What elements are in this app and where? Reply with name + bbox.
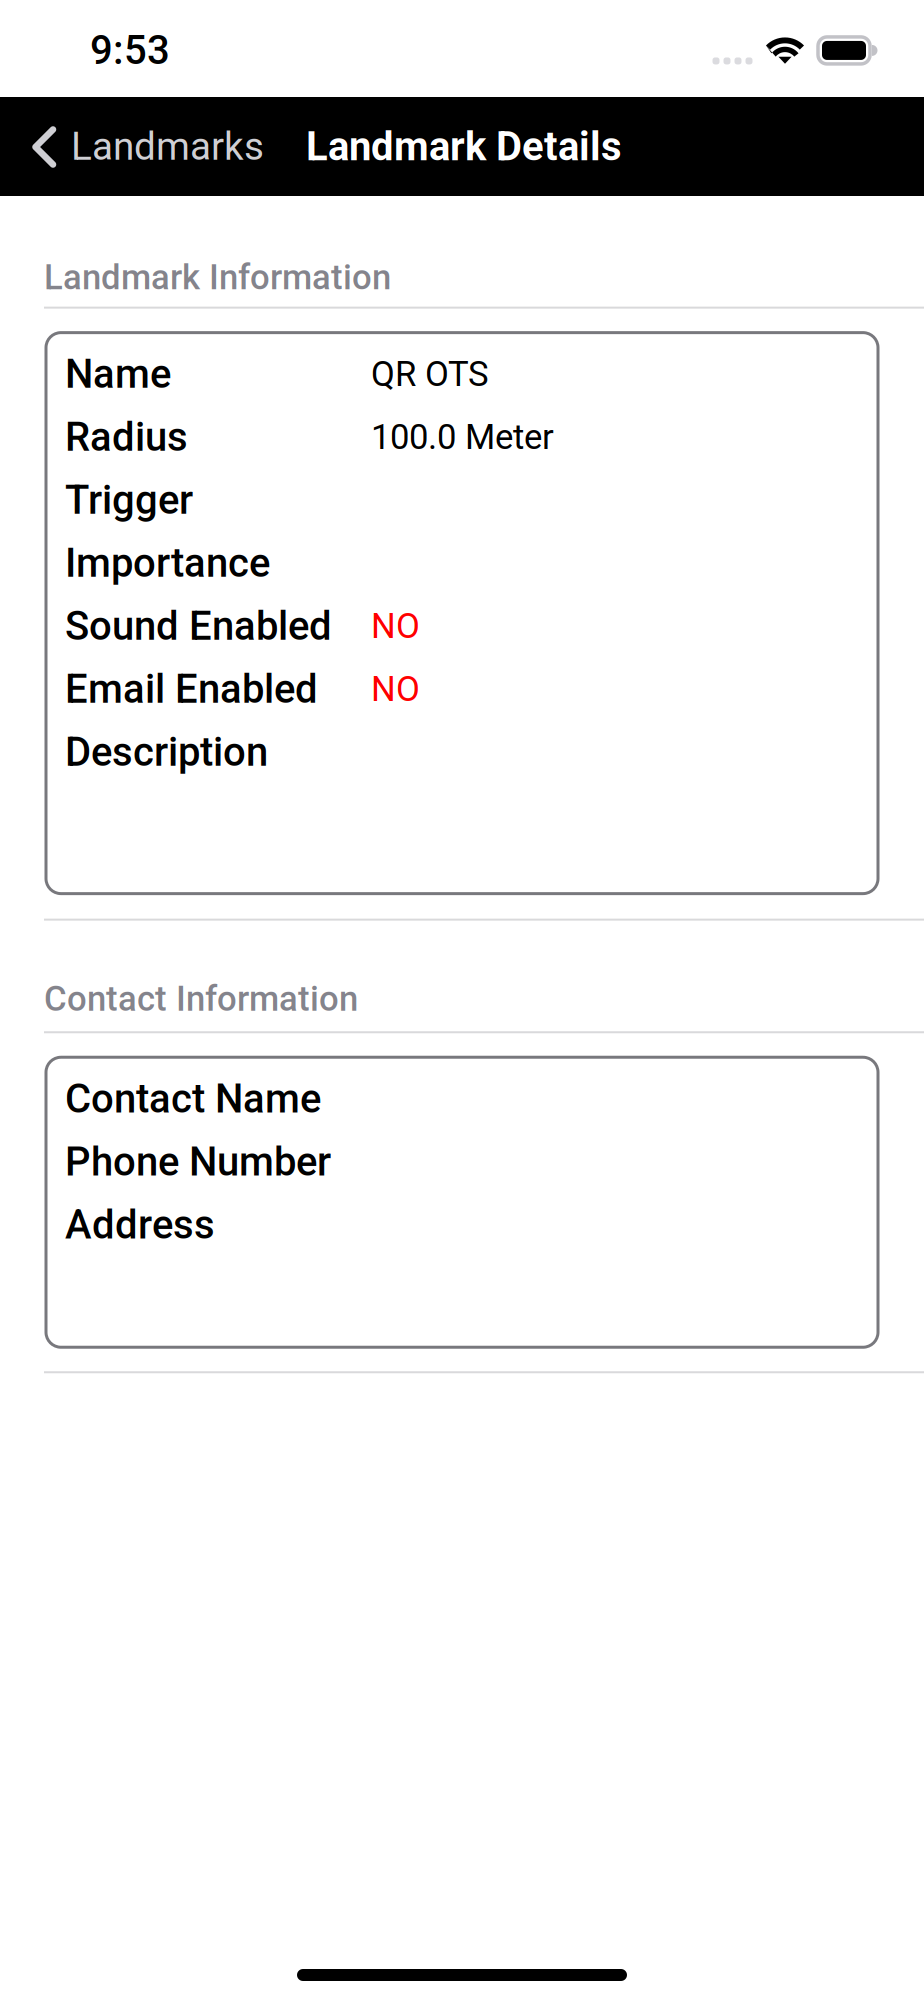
button[interactable]: Phone Number [65,1130,855,1193]
button[interactable]: Importance [65,532,855,595]
button[interactable]: Radius [65,406,855,469]
staticText: Importance [65,540,270,587]
staticText: Landmark Information [44,257,391,298]
staticText: Landmarks [71,124,264,169]
button[interactable]: Contact Name [65,1067,855,1130]
staticText: Contact Information [44,979,358,1019]
staticText: NO [371,606,420,646]
staticText: Address [65,1201,215,1248]
staticText: QR OTS [371,354,489,394]
staticText: Phone Number [65,1138,331,1185]
button[interactable]: Name [65,343,855,406]
button[interactable]: Trigger [65,469,855,532]
staticText: Name [65,351,171,398]
staticText: Radius [65,414,188,461]
staticText: Description [65,729,268,776]
staticText: Sound Enabled [65,603,332,650]
staticText: NO [371,669,420,709]
staticText: Email Enabled [65,666,318,713]
staticText: Trigger [65,477,193,524]
button[interactable]: Sound Enabled [65,595,855,658]
button[interactable]: Description [65,721,855,784]
staticText: Contact Name [65,1075,321,1122]
staticText: Landmark Details [306,123,622,170]
button[interactable]: Back to Landmarks [0,97,278,196]
staticText: 100.0 Meter [371,417,554,457]
button[interactable]: Email Enabled [65,658,855,721]
staticText: 9:53 [90,27,170,74]
button[interactable]: Address [65,1193,855,1256]
